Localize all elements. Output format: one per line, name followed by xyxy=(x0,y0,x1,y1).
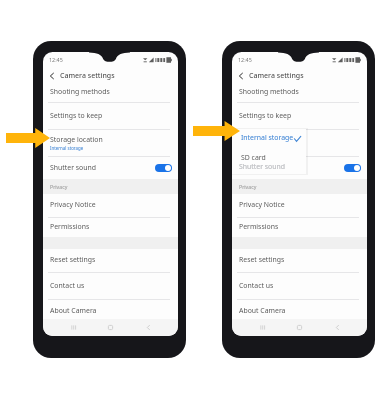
staticText: Shooting methods xyxy=(239,87,299,96)
button[interactable]: Shutter sound toggle xyxy=(155,164,172,172)
staticText: Reset settings xyxy=(239,255,285,264)
staticText: Privacy xyxy=(239,183,257,190)
staticText: Settings to keep xyxy=(50,111,103,120)
staticText: Internal storage xyxy=(241,133,294,142)
staticText: Shutter sound xyxy=(239,163,286,172)
button[interactable]: Storage location xyxy=(232,130,367,156)
button[interactable]: Shutter sound xyxy=(232,157,367,179)
button[interactable]: Settings to keep xyxy=(232,103,367,129)
staticText: Storage location xyxy=(239,135,292,144)
staticText: Shutter sound xyxy=(239,162,286,171)
button[interactable]: Home xyxy=(291,321,307,333)
staticText: Privacy Notice xyxy=(239,200,285,209)
button[interactable]: Back xyxy=(140,321,156,333)
button[interactable]: About Camera xyxy=(43,300,178,322)
button[interactable]: Shutter sound xyxy=(43,157,178,179)
button[interactable]: Back xyxy=(43,68,60,84)
staticText: Internal storage xyxy=(50,145,84,151)
staticText: Shutter sound xyxy=(50,163,97,172)
button[interactable]: Recents xyxy=(65,321,81,333)
staticText: About Camera xyxy=(239,306,286,315)
button[interactable]: Privacy Notice xyxy=(43,194,178,217)
staticText: Camera settings xyxy=(60,71,115,81)
button[interactable]: Storage location xyxy=(43,130,178,156)
button[interactable]: Permissions xyxy=(232,218,367,237)
button[interactable]: Shutter sound toggle xyxy=(344,164,361,172)
staticText: Permissions xyxy=(50,222,90,231)
button[interactable]: Shooting methods xyxy=(43,82,178,102)
button[interactable]: Home xyxy=(102,321,118,333)
button[interactable]: Recents xyxy=(254,321,270,333)
staticText: Settings to keep xyxy=(239,111,292,120)
button[interactable]: Privacy Notice xyxy=(232,194,367,217)
staticText: 12:45 xyxy=(49,56,63,63)
staticText: 12:45 xyxy=(238,56,252,63)
staticText: Permissions xyxy=(239,222,279,231)
staticText: About Camera xyxy=(50,306,97,315)
staticText: Storage location xyxy=(50,135,103,144)
button[interactable]: Settings to keep xyxy=(43,103,178,129)
button[interactable]: Back xyxy=(329,321,345,333)
staticText: Camera settings xyxy=(249,71,304,81)
button[interactable]: Permissions xyxy=(43,218,178,237)
staticText: Shooting methods xyxy=(50,87,110,96)
button[interactable]: Reset settings xyxy=(43,249,178,272)
button[interactable]: SD card xyxy=(232,151,306,165)
button[interactable]: Contact us xyxy=(232,273,367,299)
button[interactable]: Contact us xyxy=(43,273,178,299)
staticText: Privacy Notice xyxy=(50,200,96,209)
staticText: Contact us xyxy=(50,281,85,290)
staticText: Contact us xyxy=(239,281,274,290)
staticText: Privacy xyxy=(50,183,68,190)
button[interactable]: Reset settings xyxy=(232,249,367,272)
button[interactable]: Back xyxy=(232,68,249,84)
button[interactable]: About Camera xyxy=(232,300,367,322)
button[interactable]: Shooting methods xyxy=(232,82,367,102)
staticText: SD card xyxy=(241,153,266,162)
staticText: Reset settings xyxy=(50,255,96,264)
button[interactable]: Internal storage xyxy=(232,129,306,148)
